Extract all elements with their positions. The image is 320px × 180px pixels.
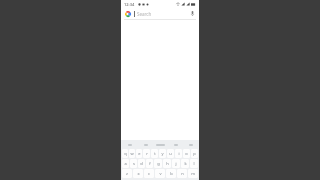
button[interactable]: Suggestion 1 bbox=[122, 140, 138, 149]
button[interactable]: m bbox=[188, 169, 198, 178]
staticText: w bbox=[130, 151, 134, 156]
staticText: x bbox=[137, 171, 140, 176]
staticText: a bbox=[124, 161, 127, 166]
staticText: k bbox=[184, 161, 187, 166]
staticText: g bbox=[157, 161, 160, 166]
button[interactable]: f bbox=[146, 159, 153, 168]
button[interactable]: Suggestion 3 bbox=[153, 140, 168, 149]
staticText: u bbox=[169, 151, 172, 156]
staticText: q bbox=[124, 151, 127, 156]
staticText: m bbox=[191, 171, 195, 176]
button[interactable]: s bbox=[130, 159, 137, 168]
staticText: n bbox=[181, 171, 184, 176]
button[interactable]: d bbox=[138, 159, 145, 168]
button[interactable]: Suggestion 4 bbox=[168, 140, 183, 149]
button[interactable]: x bbox=[133, 169, 143, 178]
button[interactable]: k bbox=[181, 159, 189, 168]
button[interactable]: r bbox=[143, 149, 150, 158]
staticText: t bbox=[154, 151, 156, 156]
button[interactable]: l bbox=[190, 159, 198, 168]
staticText: Search bbox=[137, 11, 189, 17]
staticText: v bbox=[159, 171, 162, 176]
button[interactable]: b bbox=[166, 169, 176, 178]
button[interactable]: o bbox=[183, 149, 190, 158]
staticText: b bbox=[170, 171, 173, 176]
staticText: j bbox=[175, 161, 177, 166]
staticText: s bbox=[133, 161, 135, 166]
staticText: i bbox=[178, 151, 180, 156]
button[interactable]: Suggestion 2 bbox=[138, 140, 153, 149]
button[interactable]: e bbox=[136, 149, 142, 158]
button[interactable]: i bbox=[175, 149, 182, 158]
staticText: r bbox=[146, 151, 148, 156]
button[interactable]: u bbox=[167, 149, 174, 158]
button[interactable]: z bbox=[122, 169, 132, 178]
staticText: p bbox=[193, 151, 196, 156]
button[interactable]: h bbox=[163, 159, 171, 168]
staticText: c bbox=[148, 171, 150, 176]
button[interactable]: p bbox=[191, 149, 198, 158]
staticText: h bbox=[166, 161, 169, 166]
button[interactable]: y bbox=[159, 149, 166, 158]
button[interactable]: a bbox=[122, 159, 129, 168]
button[interactable]: Google bbox=[124, 10, 131, 17]
staticText: z bbox=[126, 171, 128, 176]
staticText: 12:34 bbox=[124, 2, 135, 7]
button[interactable]: g bbox=[154, 159, 162, 168]
staticText: o bbox=[185, 151, 188, 156]
button[interactable]: q bbox=[122, 149, 128, 158]
button[interactable]: Voice search bbox=[189, 10, 196, 17]
button[interactable]: t bbox=[151, 149, 158, 158]
button[interactable]: j bbox=[172, 159, 180, 168]
button[interactable]: c bbox=[144, 169, 154, 178]
button[interactable]: Google bbox=[121, 8, 199, 19]
staticText: e bbox=[138, 151, 141, 156]
button[interactable]: w bbox=[129, 149, 135, 158]
staticText: f bbox=[149, 161, 151, 166]
button[interactable]: v bbox=[155, 169, 165, 178]
button[interactable]: n bbox=[177, 169, 187, 178]
staticText: l bbox=[193, 161, 195, 166]
staticText: d bbox=[140, 161, 143, 166]
button[interactable]: Suggestion 5 bbox=[183, 140, 198, 149]
staticText: y bbox=[161, 151, 164, 156]
